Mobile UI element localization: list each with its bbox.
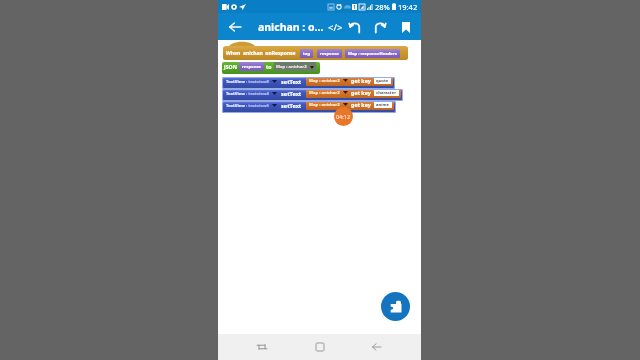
button[interactable]: TextView xyxy=(222,101,396,113)
button[interactable]: Bookmark xyxy=(396,17,416,37)
staticText: response xyxy=(320,51,339,57)
staticText: Map : responseHeaders xyxy=(348,51,397,57)
staticText: response xyxy=(242,64,261,70)
staticText: When anichan onResponse xyxy=(226,50,296,57)
staticText: TextView xyxy=(226,79,245,85)
button[interactable]: Home xyxy=(311,338,329,356)
staticText: JSON xyxy=(224,63,237,70)
button[interactable]: Recents xyxy=(253,338,271,356)
button[interactable]: Back xyxy=(367,338,385,356)
staticText: setText xyxy=(281,90,302,98)
staticText: TextView xyxy=(226,91,245,97)
button[interactable]: Redo xyxy=(370,17,390,37)
staticText: character xyxy=(376,90,397,96)
staticText: anime xyxy=(376,102,390,108)
button[interactable]: TextView xyxy=(222,89,403,101)
staticText: get key xyxy=(351,101,371,108)
button[interactable]: Add block xyxy=(381,292,410,321)
staticText: 28% xyxy=(375,2,390,12)
staticText: Map : anichar2 xyxy=(309,90,340,96)
button[interactable]: View code xyxy=(324,16,346,38)
staticText: 1 xyxy=(353,4,356,10)
button[interactable]: When anichan onResponse xyxy=(223,46,408,60)
staticText: 04:12 xyxy=(336,113,351,120)
staticText: tag xyxy=(303,51,310,57)
button[interactable]: TextView xyxy=(222,77,395,89)
staticText: setText xyxy=(281,102,302,110)
staticText: get key xyxy=(351,89,371,96)
staticText: Map : anichar2 xyxy=(309,102,340,108)
staticText: : textview4 xyxy=(245,91,269,97)
button[interactable]: Undo xyxy=(344,17,364,37)
staticText: quote xyxy=(376,78,389,84)
staticText: get key xyxy=(351,77,371,84)
button[interactable]: Back xyxy=(225,17,245,37)
staticText: TextView xyxy=(226,103,245,109)
button[interactable]: JSON xyxy=(222,62,320,74)
staticText: setText xyxy=(281,78,302,86)
staticText: : textview6 xyxy=(245,103,269,109)
staticText: : textview8 xyxy=(245,79,269,85)
staticText: to xyxy=(266,63,272,70)
staticText: 19:42 xyxy=(398,2,418,12)
staticText: anichan : o… xyxy=(258,20,324,34)
staticText: </> xyxy=(328,21,343,34)
staticText: Map : anichar2 xyxy=(276,64,307,70)
staticText: Map : anichar2 xyxy=(309,78,340,84)
